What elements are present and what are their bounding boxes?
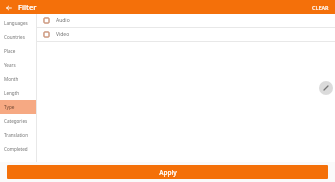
staticText: Translation — [4, 132, 28, 138]
staticText: Type — [4, 104, 15, 110]
button[interactable]: Translation — [0, 128, 36, 142]
button[interactable]: Length — [0, 86, 36, 100]
staticText: Length — [4, 90, 20, 96]
staticText: Filter — [18, 2, 37, 12]
button[interactable]: Categories — [0, 114, 36, 128]
button[interactable]: Audio — [37, 14, 335, 27]
staticText: Years — [4, 62, 16, 68]
button[interactable]: Month — [0, 72, 36, 86]
button[interactable]: Years — [0, 58, 36, 72]
staticText: Completed — [4, 146, 28, 152]
button[interactable]: Completed — [0, 142, 36, 156]
button[interactable]: Countries — [0, 30, 36, 44]
staticText: Languages — [4, 20, 28, 26]
button[interactable]: Edit — [319, 81, 333, 95]
button[interactable]: Video — [37, 28, 335, 41]
staticText: Apply — [159, 168, 177, 177]
staticText: Countries — [4, 34, 25, 40]
button[interactable]: Apply — [7, 165, 328, 179]
staticText: CLEAR — [312, 4, 329, 11]
button[interactable]: CLEAR — [306, 2, 335, 13]
staticText: Month — [4, 76, 19, 82]
button[interactable]: Place — [0, 44, 36, 58]
staticText: Audio — [56, 17, 70, 24]
staticText: Video — [56, 31, 70, 38]
button[interactable]: Back — [3, 2, 14, 13]
button[interactable]: Languages — [0, 16, 36, 30]
staticText: Place — [4, 48, 16, 54]
button[interactable]: Type — [0, 100, 36, 114]
staticText: Categories — [4, 118, 28, 124]
